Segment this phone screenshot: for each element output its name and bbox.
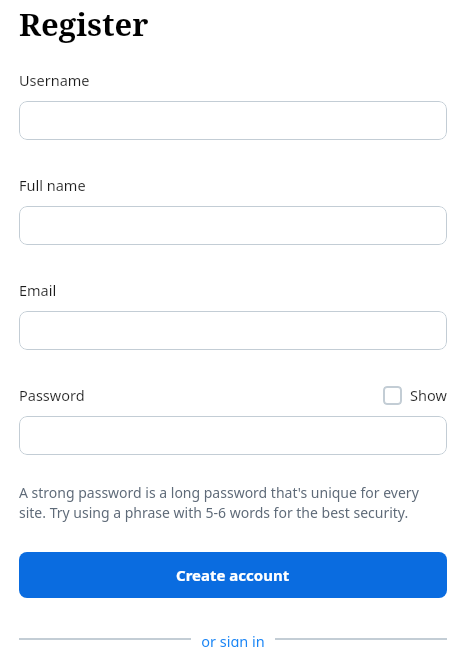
staticText: Password [19,385,85,405]
button[interactable]: or sign in [191,631,275,647]
button[interactable]: Show [383,385,447,405]
staticText: or sign in [201,631,265,647]
staticText: Register [19,3,149,45]
button[interactable] [19,416,447,455]
button[interactable] [19,311,447,350]
staticText: Full name [19,175,86,195]
button[interactable]: Create account [19,552,447,598]
staticText: Show [410,385,447,405]
staticText: Username [19,70,90,90]
button[interactable] [19,101,447,140]
staticText: Create account [176,565,290,585]
staticText: A strong password is a long password tha… [19,483,447,523]
staticText: Email [19,280,57,300]
button[interactable] [19,206,447,245]
